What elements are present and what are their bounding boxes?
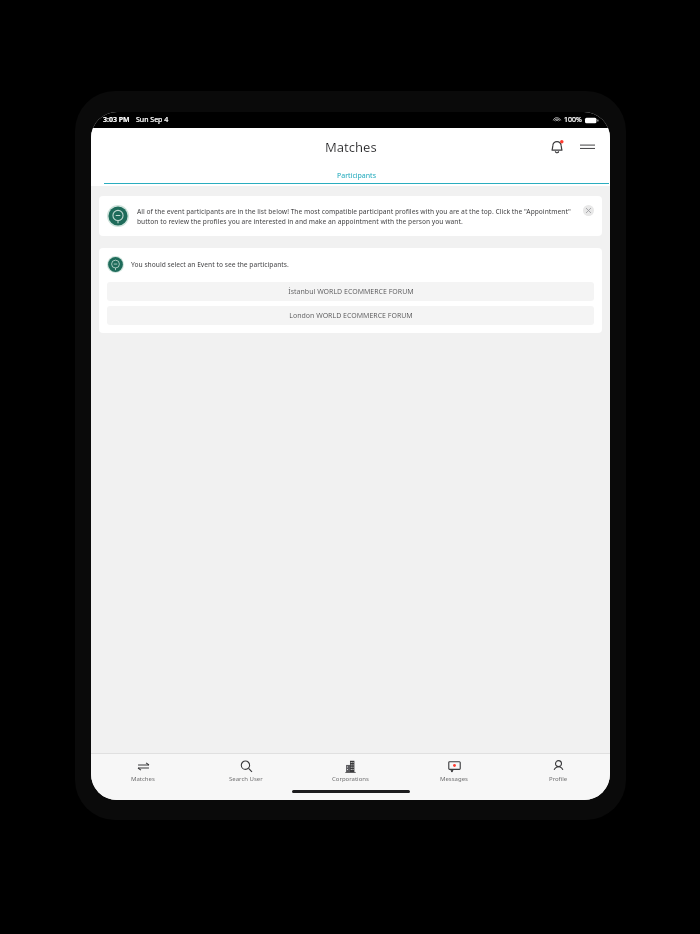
staticText: All of the event participants are in the…	[137, 207, 572, 226]
staticText: Matches	[325, 138, 377, 156]
staticText: 100%	[564, 115, 582, 125]
staticText: Messages	[440, 775, 468, 783]
staticText: London WORLD ECOMMERCE FORUM	[289, 311, 413, 321]
staticText: 3:03 PM	[103, 115, 130, 125]
button[interactable]: Messages	[402, 754, 506, 787]
staticText: Participants	[337, 171, 376, 181]
staticText: You should select an Event to see the pa…	[131, 260, 289, 269]
button[interactable]: Corporations	[298, 754, 402, 787]
button[interactable]: Participants	[103, 168, 610, 184]
staticText: Profile	[549, 775, 568, 783]
staticText: Corporations	[332, 775, 369, 783]
button[interactable]: Search User	[194, 754, 298, 787]
button[interactable]: İstanbul WORLD ECOMMERCE FORUM	[107, 282, 594, 301]
button[interactable]: Profile	[506, 754, 610, 787]
button[interactable]: Menu	[576, 136, 598, 158]
staticText: Search User	[229, 775, 263, 783]
staticText: Matches	[131, 775, 155, 783]
button[interactable]: London WORLD ECOMMERCE FORUM	[107, 306, 594, 325]
staticText: Sun Sep 4	[136, 115, 169, 125]
button[interactable]: Matches	[91, 754, 194, 787]
staticText: İstanbul WORLD ECOMMERCE FORUM	[288, 287, 414, 297]
button[interactable]: Notifications	[546, 136, 568, 158]
button[interactable]: Close	[583, 205, 594, 216]
